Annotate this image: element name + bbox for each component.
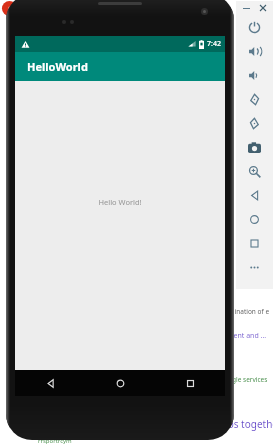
staticText: Hello World! [98,197,142,207]
staticText: eos togethe [222,417,273,431]
button[interactable]: Home [85,370,155,396]
staticText: gle services [232,375,270,384]
staticText: rdination of e [228,307,270,316]
button[interactable]: Take screenshot [236,135,273,159]
button[interactable]: Zoom [236,159,273,183]
staticText: HelloWorld [27,59,88,74]
button[interactable]: More [236,255,273,279]
button[interactable]: Rotate left [236,87,273,111]
button[interactable]: Close [257,2,269,14]
button[interactable]: Back [15,370,85,396]
button[interactable]: Back [236,183,273,207]
button[interactable]: Volume up [236,39,273,63]
button[interactable]: Overview [236,231,273,255]
staticText: 7:42 [207,39,221,49]
staticText: ment and ... [227,331,267,341]
button[interactable]: Home [236,207,273,231]
button[interactable]: Rotate right [236,111,273,135]
button[interactable]: Volume down [236,63,273,87]
button[interactable]: Minimize [240,2,252,14]
staticText: rrsportrcym [38,437,72,445]
button[interactable]: Power [236,15,273,39]
button[interactable]: Overview [155,370,225,396]
